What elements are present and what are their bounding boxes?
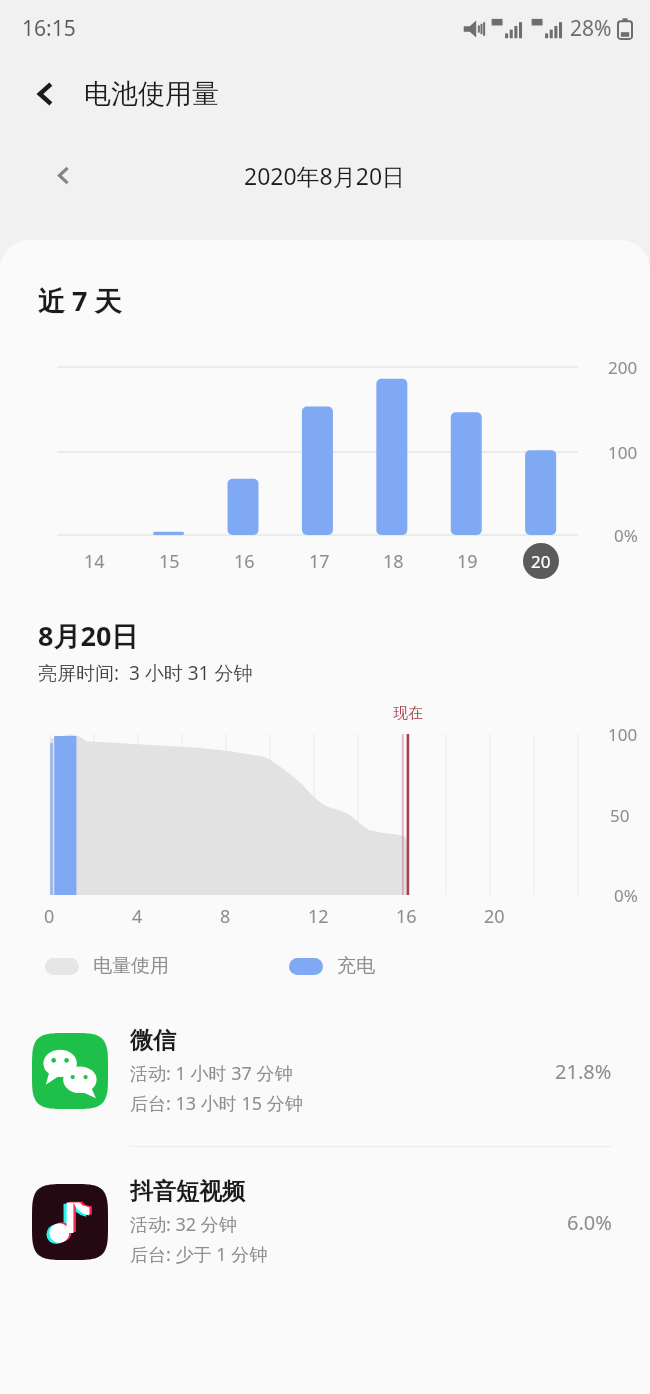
- staticText: 微信: [130, 1026, 176, 1055]
- button[interactable]: Previous day: [38, 150, 88, 200]
- staticText: 亮屏时间: 3 小时 31 分钟: [38, 660, 253, 686]
- staticText: 活动: 32 分钟: [130, 1212, 237, 1237]
- staticText: 21.8%: [555, 1058, 612, 1085]
- staticText: 50: [610, 804, 630, 827]
- staticText: 后台: 少于 1 分钟: [130, 1242, 268, 1267]
- button[interactable]: 抖音短视频: [0, 1147, 650, 1297]
- staticText: 14: [84, 549, 105, 574]
- staticText: 充电: [337, 954, 375, 978]
- staticText: 0%: [614, 524, 638, 547]
- staticText: 8月20日: [38, 617, 139, 654]
- staticText: 20: [484, 904, 505, 929]
- staticText: 12: [308, 904, 329, 929]
- staticText: 0: [44, 904, 55, 929]
- staticText: 近 7 天: [38, 282, 122, 319]
- staticText: 4: [132, 904, 143, 929]
- staticText: 16: [234, 549, 255, 574]
- staticText: 15: [159, 549, 180, 574]
- staticText: 19: [457, 549, 478, 574]
- staticText: 0%: [614, 884, 638, 907]
- staticText: 16:15: [22, 14, 76, 43]
- staticText: 17: [309, 549, 330, 574]
- button[interactable]: Back: [18, 66, 74, 122]
- staticText: 100: [608, 441, 638, 464]
- staticText: 活动: 1 小时 37 分钟: [130, 1061, 293, 1086]
- staticText: 18: [383, 549, 404, 574]
- staticText: 后台: 13 小时 15 分钟: [130, 1091, 303, 1116]
- staticText: 2020年8月20日: [244, 160, 406, 191]
- button[interactable]: 微信: [0, 996, 650, 1146]
- staticText: 200: [608, 356, 638, 379]
- staticText: 电池使用量: [84, 77, 219, 111]
- staticText: 100: [608, 723, 638, 746]
- staticText: 8: [220, 904, 231, 929]
- staticText: 抖音短视频: [130, 1177, 245, 1206]
- staticText: 28%: [570, 14, 612, 43]
- staticText: 现在: [393, 704, 423, 723]
- staticText: 电量使用: [93, 954, 169, 978]
- staticText: 6.0%: [567, 1209, 612, 1236]
- staticText: 16: [396, 904, 417, 929]
- staticText: 20: [531, 550, 551, 573]
